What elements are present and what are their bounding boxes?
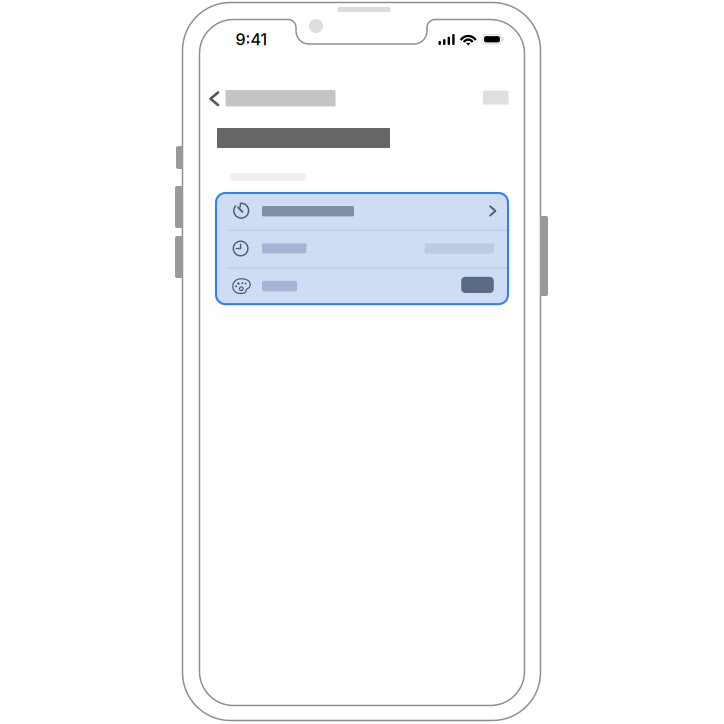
button[interactable]: Timer (0, 0, 724, 724)
button[interactable]: Edit (0, 0, 724, 724)
staticText: 9:41 (235, 30, 267, 49)
button[interactable]: Back (0, 0, 724, 724)
button[interactable]: Appearance option (0, 0, 724, 724)
